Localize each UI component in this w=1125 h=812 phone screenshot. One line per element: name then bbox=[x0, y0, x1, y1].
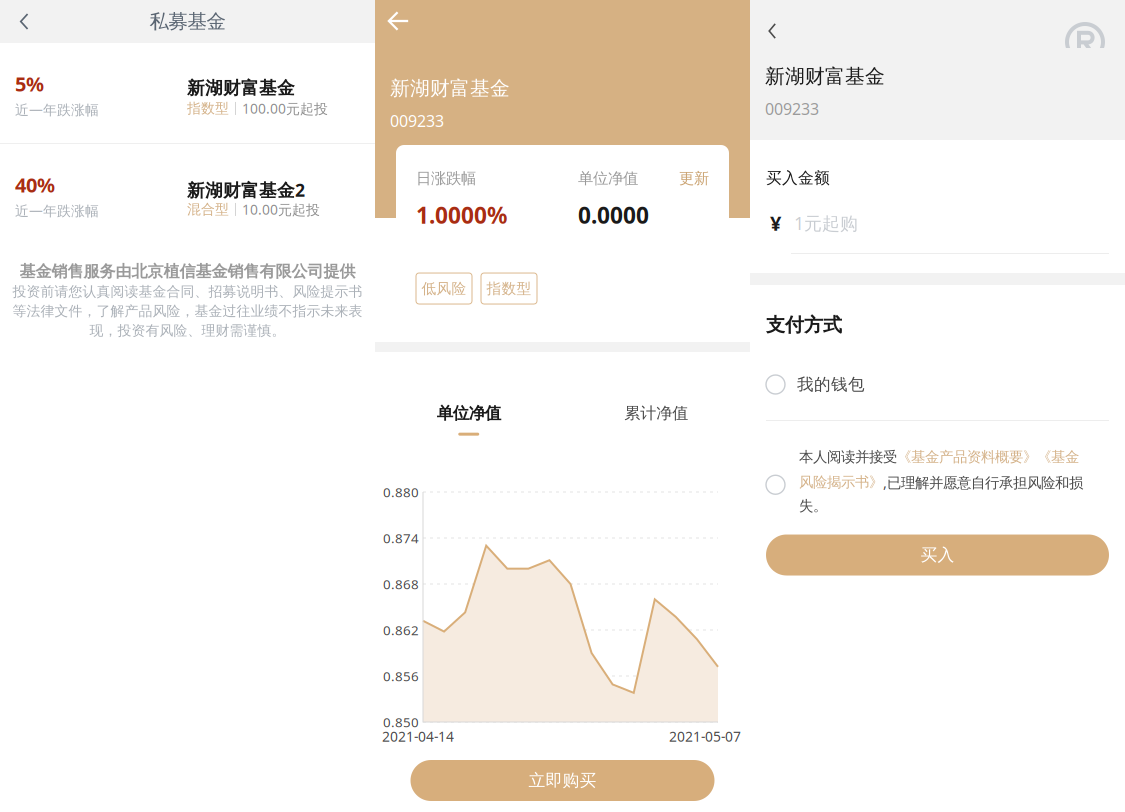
staticText: 0.868 bbox=[383, 575, 419, 593]
staticText: 2021-04-14 bbox=[382, 727, 454, 746]
button[interactable]: 更新 bbox=[679, 169, 709, 188]
button[interactable]: Back bbox=[375, 0, 423, 42]
staticText: 风险揭示书》 bbox=[799, 473, 883, 491]
staticText: 0.850 bbox=[383, 713, 419, 731]
staticText: 低风险 bbox=[421, 279, 466, 298]
button[interactable]: 40% bbox=[0, 144, 375, 244]
button[interactable]: 买入 bbox=[766, 534, 1109, 575]
staticText: 买入 bbox=[920, 544, 954, 566]
staticText: 混合型 bbox=[187, 201, 229, 218]
staticText: 单位净值 bbox=[578, 169, 638, 188]
staticText: 10.00元起投 bbox=[242, 200, 320, 219]
staticText: 0.0000 bbox=[578, 200, 649, 230]
staticText: 新湖财富基金 bbox=[390, 76, 510, 101]
staticText: 0.880 bbox=[383, 483, 419, 501]
staticText: 失。 bbox=[799, 497, 827, 515]
staticText: 单位净值 bbox=[437, 403, 501, 424]
staticText: 0.874 bbox=[383, 529, 419, 547]
staticText: 1.0000% bbox=[416, 200, 507, 230]
staticText: 更新 bbox=[679, 169, 709, 188]
staticText: 009233 bbox=[390, 110, 444, 132]
staticText: 买入金额 bbox=[766, 168, 830, 188]
staticText: 近—年跌涨幅 bbox=[15, 201, 99, 220]
staticText: 现，投资有风险、理财需谨慎。 bbox=[89, 322, 285, 339]
staticText: 1元起购 bbox=[794, 211, 858, 235]
staticText: 等法律文件，了解产品风险，基金过往业绩不指示未来表 bbox=[12, 302, 362, 320]
staticText: 100.00元起投 bbox=[242, 99, 328, 118]
staticText: 基金销售服务由北京植信基金销售有限公司提供 bbox=[19, 261, 355, 282]
staticText: 5% bbox=[15, 70, 44, 97]
button[interactable]: Back bbox=[0, 0, 46, 43]
staticText: 指数型 bbox=[187, 100, 229, 117]
staticText: 2021-05-07 bbox=[669, 727, 741, 746]
staticText: 40% bbox=[15, 171, 55, 198]
button[interactable]: 累计净值 bbox=[562, 352, 750, 492]
staticText: 本人阅读并接受 bbox=[799, 448, 897, 466]
button[interactable]: 立即购买 bbox=[410, 760, 714, 801]
staticText: ¥ bbox=[770, 209, 781, 237]
staticText: 立即购买 bbox=[528, 770, 596, 791]
button[interactable]: 单位净值 bbox=[375, 352, 562, 492]
staticText: 《基金产品资料概要》《基金 bbox=[897, 448, 1079, 466]
staticText: 投资前请您认真阅读基金合同、招募说明书、风险提示书 bbox=[12, 283, 362, 300]
staticText: 新湖财富基金 bbox=[765, 64, 885, 89]
staticText: 指数型 bbox=[486, 279, 531, 298]
staticText: 0.856 bbox=[383, 667, 419, 685]
button[interactable]: 我的钱包 bbox=[766, 333, 1109, 420]
staticText: 日涨跌幅 bbox=[416, 169, 476, 188]
staticText: 新湖财富基金 bbox=[187, 77, 295, 99]
staticText: 近—年跌涨幅 bbox=[15, 100, 99, 119]
staticText: 0.862 bbox=[383, 621, 419, 639]
staticText: 私募基金 bbox=[149, 9, 225, 34]
staticText: 累计净值 bbox=[624, 403, 688, 423]
staticText: 新湖财富基金2 bbox=[187, 178, 305, 202]
button[interactable]: 5% bbox=[0, 43, 375, 143]
staticText: 我的钱包 bbox=[797, 374, 865, 395]
staticText: 支付方式 bbox=[766, 313, 842, 337]
button[interactable]: 本人阅读并接受 bbox=[766, 421, 1109, 521]
button[interactable]: Back bbox=[750, 9, 795, 53]
staticText: 009233 bbox=[765, 98, 819, 120]
staticText: ,已理解并愿意自行承担风险和损 bbox=[883, 472, 1083, 492]
